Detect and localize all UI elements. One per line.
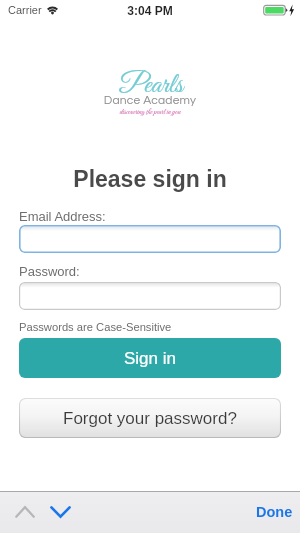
button[interactable]: Previous field — [11, 498, 39, 526]
staticText: 3:04 PM — [0, 4, 300, 17]
staticText: discovering the pearl in you — [0, 107, 300, 117]
staticText: Dance Academy — [0, 94, 300, 106]
staticText: Pearls — [1, 67, 300, 103]
staticText: Password: — [19, 264, 80, 279]
staticText: Forgot your password? — [63, 409, 237, 428]
staticText: Email Address: — [19, 209, 106, 224]
button[interactable]: Email Address — [19, 225, 281, 253]
button[interactable]: Next field — [46, 498, 74, 526]
staticText: Carrier — [8, 4, 42, 16]
button[interactable]: Password — [19, 282, 281, 310]
button[interactable]: Sign in — [19, 338, 281, 378]
button[interactable]: Done — [249, 497, 300, 527]
button[interactable]: Forgot your password? — [19, 398, 281, 438]
staticText: Please sign in — [0, 166, 300, 192]
staticText: Passwords are Case-Sensitive — [19, 321, 172, 334]
staticText: Done — [256, 504, 293, 520]
staticText: Sign in — [124, 349, 176, 368]
